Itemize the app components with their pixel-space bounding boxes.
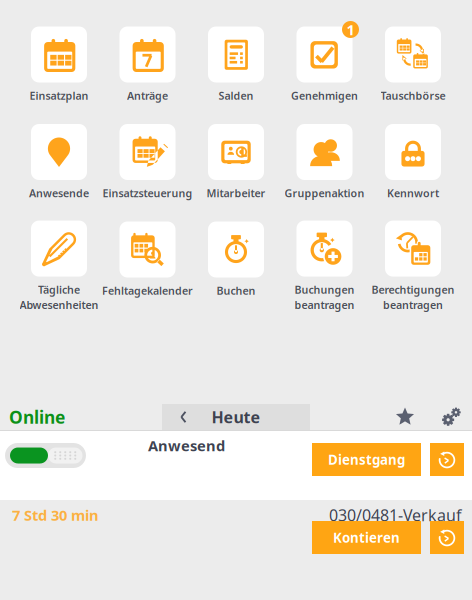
staticText: Dienstgang bbox=[328, 451, 405, 468]
staticText: Salden bbox=[218, 88, 253, 103]
button[interactable]: Anwesend bbox=[5, 443, 86, 468]
button[interactable]: Salden bbox=[192, 26, 280, 124]
staticText: Genehmigen bbox=[291, 88, 358, 103]
button[interactable]: Mitarbeiter bbox=[192, 124, 280, 221]
button[interactable]: Favoriten bbox=[387, 404, 423, 430]
staticText: Anwesende bbox=[29, 186, 89, 200]
staticText: beantragen bbox=[383, 298, 443, 312]
staticText: 7 Std 30 min bbox=[12, 505, 99, 525]
staticText: Buchungen bbox=[294, 283, 354, 297]
staticText: Gruppenaktion bbox=[284, 186, 364, 200]
button[interactable]: Buchungen bbox=[280, 221, 369, 319]
staticText: Anträge bbox=[127, 88, 168, 103]
button[interactable]: Fehltagekalender bbox=[103, 221, 192, 319]
button[interactable]: 1 bbox=[280, 26, 369, 124]
staticText: Kennwort bbox=[387, 186, 439, 200]
staticText: Berechtigungen bbox=[371, 283, 454, 297]
button[interactable]: Berechtigungen bbox=[369, 221, 457, 319]
button[interactable]: Einsatzsteuerung bbox=[103, 124, 192, 221]
button[interactable]: Tauschbörse bbox=[369, 26, 457, 124]
button[interactable]: Zeitbuchung bbox=[430, 443, 464, 476]
staticText: Buchen bbox=[216, 283, 255, 298]
button[interactable]: Heute bbox=[162, 404, 310, 430]
button[interactable]: Gruppenaktion bbox=[280, 124, 369, 221]
button[interactable]: Einsatzplan bbox=[15, 26, 103, 124]
staticText: 030/0481-Verkauf bbox=[329, 504, 462, 526]
staticText: Heute bbox=[211, 406, 260, 428]
staticText: Abwesenheiten bbox=[19, 298, 98, 312]
staticText: Anwesend bbox=[148, 436, 225, 455]
staticText: Einsatzsteuerung bbox=[102, 186, 192, 200]
staticText: 1 bbox=[346, 20, 354, 39]
staticText: beantragen bbox=[294, 298, 354, 312]
staticText: Einsatzplan bbox=[29, 88, 88, 103]
button[interactable]: Dienstgang bbox=[312, 443, 421, 476]
button[interactable]: Kontieren bbox=[312, 521, 421, 554]
button[interactable]: Tägliche bbox=[15, 221, 103, 319]
button[interactable]: Anträge bbox=[103, 26, 192, 124]
button[interactable]: Zeitbuchung bbox=[430, 521, 464, 554]
staticText: Tägliche bbox=[38, 283, 80, 297]
staticText: Kontieren bbox=[333, 529, 400, 546]
button[interactable]: Online bbox=[0, 404, 109, 430]
button[interactable]: Kennwort bbox=[369, 124, 457, 221]
staticText: Mitarbeiter bbox=[206, 186, 265, 200]
button[interactable]: Einstellungen bbox=[434, 404, 468, 430]
staticText: Online bbox=[9, 405, 65, 428]
staticText: Tauschbörse bbox=[380, 88, 445, 103]
button[interactable]: Anwesende bbox=[15, 124, 103, 221]
button[interactable]: Buchen bbox=[192, 221, 280, 319]
staticText: Fehltagekalender bbox=[102, 283, 193, 298]
